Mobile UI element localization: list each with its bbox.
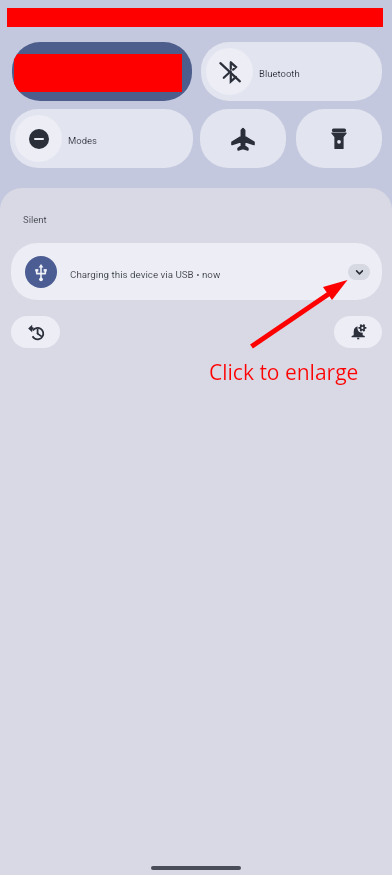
button[interactable]: Flashlight — [296, 109, 382, 168]
staticText: Click to enlarge — [209, 358, 359, 387]
staticText: Charging this device via USB • now — [70, 269, 221, 280]
button[interactable] — [12, 42, 192, 101]
button[interactable]: Bluetooth — [201, 42, 382, 101]
button[interactable]: Notification settings — [334, 316, 382, 348]
button[interactable]: Modes — [10, 109, 193, 168]
staticText: Bluetooth — [259, 68, 300, 79]
staticText: Silent — [23, 214, 47, 225]
button[interactable]: Charging this device via USB • now — [11, 243, 382, 300]
button[interactable]: Notification history — [11, 316, 60, 348]
staticText: Modes — [68, 135, 98, 146]
button[interactable]: Expand — [348, 264, 370, 280]
button[interactable]: Airplane mode — [200, 109, 286, 168]
